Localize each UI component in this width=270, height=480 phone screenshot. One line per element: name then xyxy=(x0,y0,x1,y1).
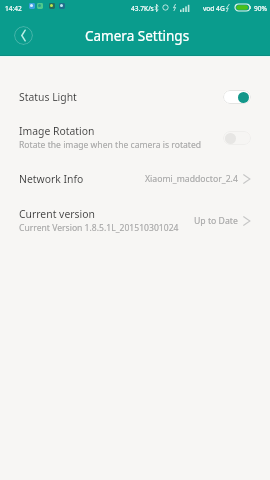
button[interactable]: Back xyxy=(14,26,33,45)
staticText: 43.7K/s xyxy=(131,4,154,13)
staticText: Camera Settings xyxy=(85,27,190,45)
staticText: Image Rotation xyxy=(19,124,95,138)
button[interactable]: Image Rotation xyxy=(0,114,270,161)
staticText: Rotate the image when the camera is rota… xyxy=(19,139,202,151)
staticText: Current version xyxy=(19,207,95,221)
staticText: 90% xyxy=(254,4,268,13)
staticText: Network Info xyxy=(19,172,84,186)
staticText: vod 4G xyxy=(203,4,225,13)
staticText: Status Light xyxy=(19,90,77,104)
button[interactable]: Status Light xyxy=(0,79,270,114)
button[interactable]: Network Info xyxy=(0,161,270,196)
staticText: Up to Date xyxy=(194,215,238,227)
staticText: Xiaomi_maddoctor_2.4 xyxy=(145,173,238,185)
button[interactable]: Status light on xyxy=(223,90,251,104)
button[interactable]: Current version xyxy=(0,197,270,244)
button[interactable]: Image rotation off xyxy=(223,131,251,145)
staticText: 14:42 xyxy=(5,4,22,13)
staticText: Current Version 1.8.5.1L_201510301024 xyxy=(19,222,179,234)
